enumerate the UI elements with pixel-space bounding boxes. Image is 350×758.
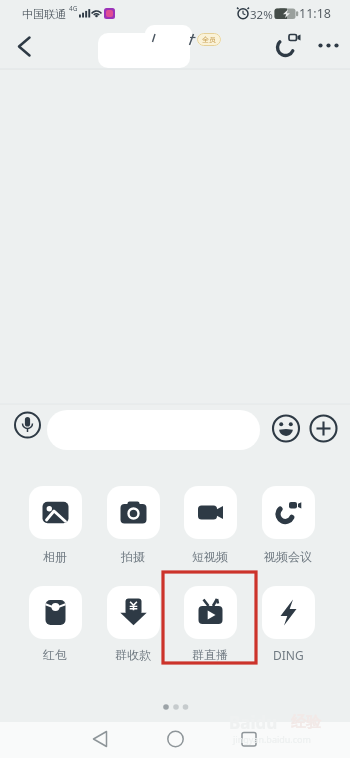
button[interactable]: [155, 722, 195, 758]
button[interactable]: [268, 28, 306, 64]
staticText: 短视频: [192, 549, 228, 564]
staticText: 经验: [291, 713, 321, 732]
staticText: 32%: [250, 7, 273, 23]
staticText: 中国联通: [22, 7, 66, 21]
button[interactable]: 短视频: [177, 486, 243, 564]
button[interactable]: [271, 414, 300, 443]
staticText: 拍摄: [121, 549, 145, 564]
button[interactable]: [8, 30, 44, 64]
button[interactable]: 红包: [22, 586, 88, 662]
button[interactable]: [80, 722, 120, 758]
staticText: 全员: [202, 35, 216, 44]
staticText: Baidu: [229, 711, 278, 734]
button[interactable]: [229, 722, 269, 758]
button[interactable]: [308, 28, 346, 64]
button[interactable]: 拍摄: [100, 486, 166, 564]
button[interactable]: [47, 410, 260, 450]
button[interactable]: 群直播: [177, 586, 243, 662]
staticText: 视频会议: [264, 549, 312, 564]
staticText: 群直播: [192, 647, 228, 662]
staticText: 11:18: [299, 5, 331, 22]
staticText: jingyan.baidu.com: [233, 733, 311, 745]
button[interactable]: DING: [255, 586, 321, 663]
staticText: 相册: [43, 549, 67, 564]
staticText: DING: [273, 647, 304, 663]
button[interactable]: 视频会议: [255, 486, 321, 564]
button[interactable]: 相册: [22, 486, 88, 564]
button[interactable]: [12, 410, 43, 441]
button[interactable]: [309, 414, 338, 443]
staticText: 红包: [43, 647, 67, 662]
staticText: 群收款: [115, 647, 151, 662]
button[interactable]: 群收款: [100, 586, 166, 662]
staticText: 4G: [69, 4, 78, 13]
